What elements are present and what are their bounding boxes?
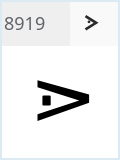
button[interactable]: New terminal session xyxy=(70,2,118,46)
button[interactable]: 8919 xyxy=(2,2,70,46)
staticText: 8919 xyxy=(4,11,46,36)
